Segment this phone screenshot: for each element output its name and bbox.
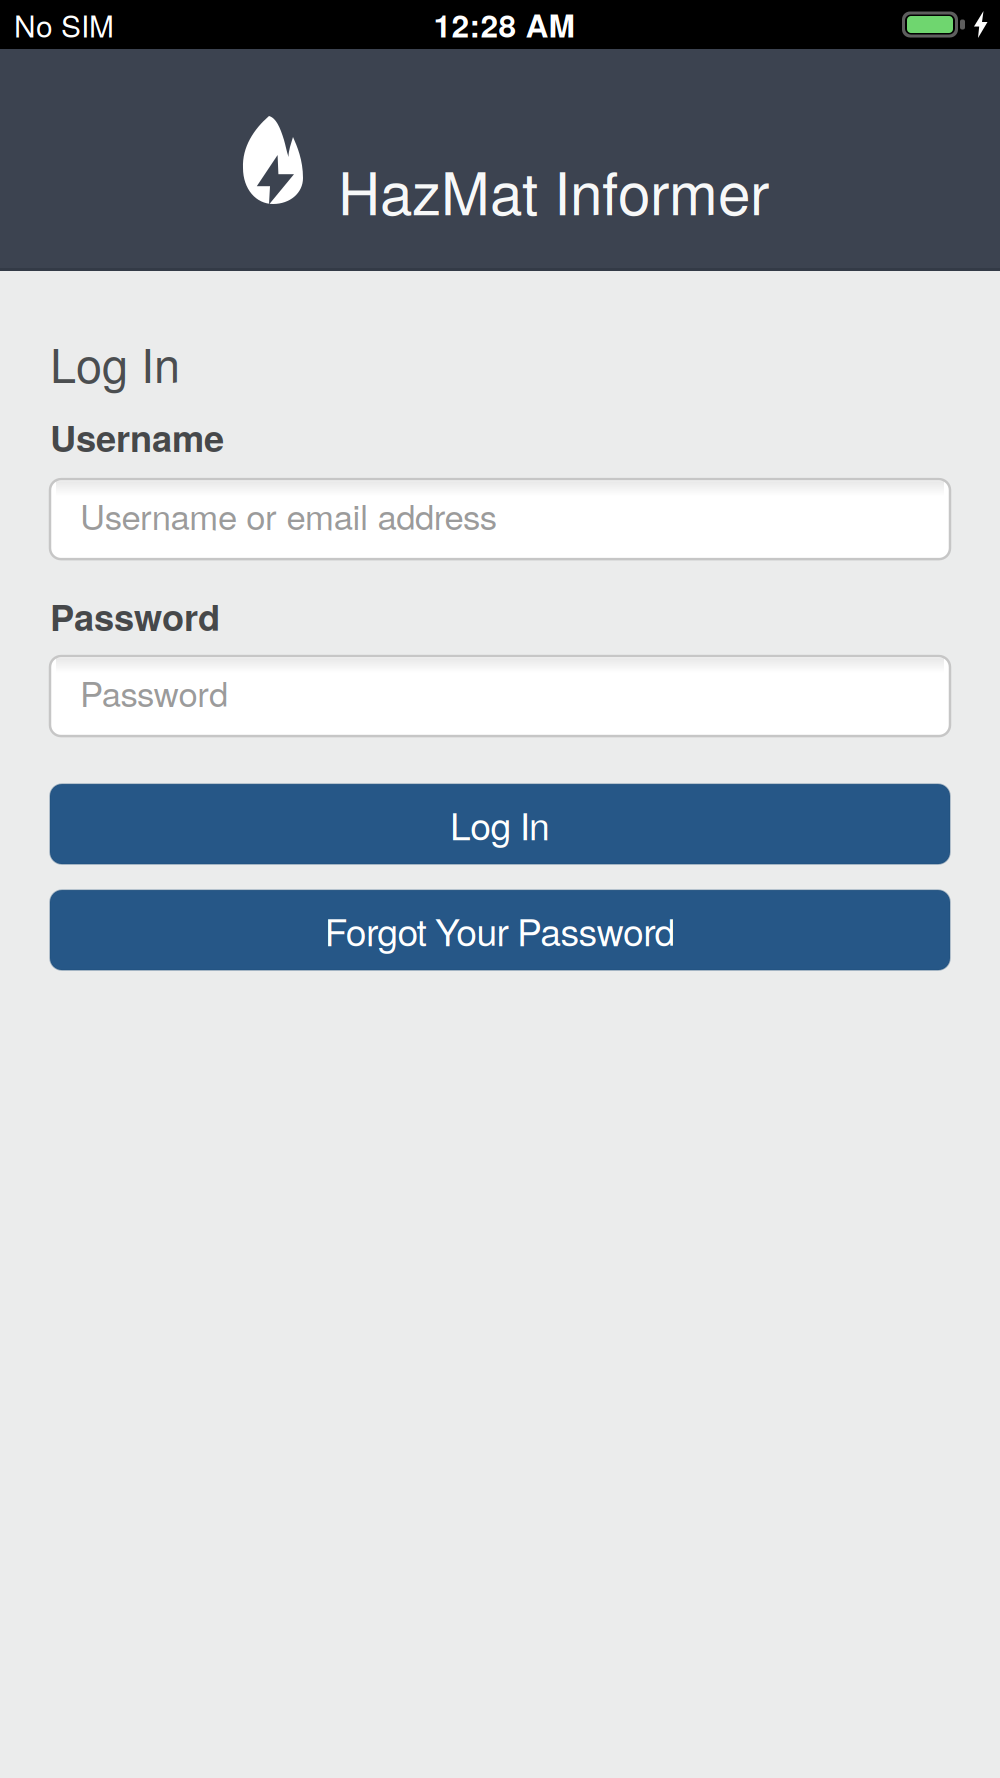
- button[interactable]: Log In: [50, 784, 950, 864]
- staticText: Password: [80, 667, 228, 717]
- staticText: 12:28 AM: [433, 2, 574, 47]
- button[interactable]: Username or email address: [50, 479, 950, 559]
- staticText: No SIM: [14, 3, 114, 46]
- staticText: Username or email address: [80, 490, 497, 540]
- button[interactable]: Forgot Your Password: [50, 890, 950, 970]
- staticText: Password: [50, 590, 220, 642]
- button[interactable]: Password: [50, 656, 950, 736]
- staticText: HazMat Informer: [338, 148, 769, 232]
- staticText: Log In: [450, 797, 550, 851]
- staticText: Forgot Your Password: [325, 903, 675, 957]
- staticText: Log In: [50, 329, 180, 396]
- staticText: Username: [50, 411, 224, 463]
